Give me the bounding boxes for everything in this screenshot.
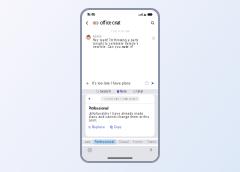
staticText: It's too late I have plans (103, 97, 136, 100)
button[interactable]: Replace (88, 125, 105, 129)
staticText: Chat (136, 90, 143, 93)
staticText: It's too late I have plans (92, 81, 131, 85)
button[interactable]: Copy (110, 125, 122, 129)
staticText: Note (120, 90, 127, 93)
staticText: Professional (88, 106, 108, 110)
staticText: abc (85, 140, 91, 144)
button[interactable]: Search (150, 20, 155, 26)
staticText: Unfortunately, I have already made plans… (88, 112, 149, 122)
staticText: Replace (92, 125, 105, 129)
button[interactable]: Back (84, 20, 89, 26)
staticText: 16:46 (87, 12, 95, 17)
staticText: Hey team! I'm throwing a party tonight t… (93, 39, 139, 49)
button[interactable]: Casual (118, 140, 130, 144)
staticText: Office Chat (100, 21, 120, 25)
button[interactable]: Add attachment (85, 81, 89, 85)
button[interactable]: Note (116, 89, 128, 94)
button[interactable]: Tweet (146, 140, 157, 144)
button[interactable]: Chat (132, 89, 144, 94)
staticText: Professional (95, 140, 115, 144)
button[interactable]: Emoji keyboard (87, 148, 92, 152)
button[interactable]: Funny (132, 140, 144, 144)
staticText: Robin (93, 35, 102, 38)
staticText: Copy (114, 125, 122, 129)
button[interactable]: Search (96, 89, 112, 94)
staticText: Tweet (147, 140, 156, 144)
button[interactable]: Dictate (149, 148, 152, 152)
staticText: Funny (133, 140, 143, 144)
button[interactable]: Professional (93, 140, 116, 144)
staticText: Search (100, 90, 111, 93)
staticText: Tue 9:41 AM (111, 30, 129, 33)
button[interactable]: Send (148, 81, 154, 85)
button[interactable]: Stickers (145, 81, 148, 85)
staticText: Casual (119, 140, 129, 144)
